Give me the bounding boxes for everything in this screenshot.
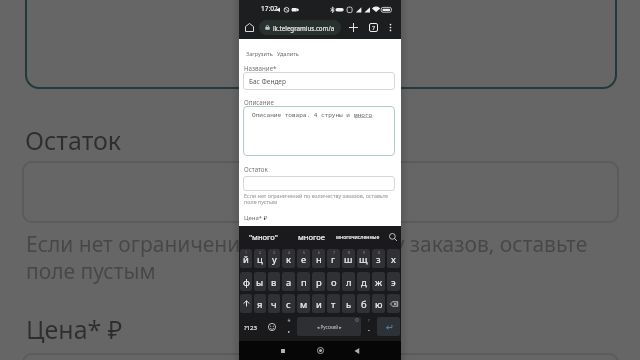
button[interactable]: New tab xyxy=(345,19,361,35)
staticText: 17:02 xyxy=(261,4,278,13)
button[interactable]: , xyxy=(282,317,295,336)
button[interactable]: 6 xyxy=(312,249,325,268)
button[interactable]: э xyxy=(387,272,400,291)
button[interactable]: 0 xyxy=(372,249,385,268)
button[interactable]: м xyxy=(297,294,310,313)
staticText: 8 xyxy=(348,250,350,255)
staticText: Загрузить xyxy=(246,50,273,58)
button[interactable]: многое xyxy=(289,226,333,247)
button[interactable]: ю xyxy=(372,294,385,313)
staticText: д xyxy=(361,276,367,289)
staticText: 6 xyxy=(318,250,320,255)
button[interactable]: Tabs xyxy=(365,19,381,35)
button[interactable]: 1 xyxy=(240,249,252,268)
button[interactable]: а xyxy=(282,272,295,291)
button[interactable]: Enter xyxy=(377,317,400,336)
staticText: многочисленные xyxy=(336,233,380,240)
staticText: Цена* ₽ xyxy=(26,312,123,346)
staticText: 0 xyxy=(378,250,380,255)
button[interactable]: 5 xyxy=(297,249,310,268)
staticText: 5 xyxy=(303,250,305,255)
button[interactable]: 7 xyxy=(327,249,340,268)
staticText: 1 xyxy=(245,250,247,255)
staticText: Удалить xyxy=(277,50,299,58)
staticText: много xyxy=(354,111,373,119)
button[interactable]: многочисленные xyxy=(336,226,380,247)
button[interactable]: Shift xyxy=(240,294,252,313)
staticText: х xyxy=(391,253,396,266)
button[interactable]: в xyxy=(268,272,280,291)
button[interactable]: и xyxy=(312,294,325,313)
button[interactable]: . xyxy=(362,317,375,336)
button[interactable]: 3 xyxy=(268,249,280,268)
staticText: ч xyxy=(271,298,277,311)
button[interactable]: ?123 xyxy=(239,317,261,336)
staticText: , xyxy=(288,325,290,335)
staticText: г xyxy=(331,253,336,266)
button[interactable]: р xyxy=(312,272,325,291)
button[interactable]: ф xyxy=(240,272,252,291)
staticText: э xyxy=(391,276,396,289)
staticText: Название* xyxy=(244,64,277,72)
staticText: Описание xyxy=(244,98,274,106)
button[interactable]: More options xyxy=(382,19,398,35)
staticText: ы xyxy=(256,276,264,289)
staticText: й xyxy=(243,253,249,266)
button[interactable]: ь xyxy=(342,294,355,313)
button[interactable]: "много" xyxy=(241,226,285,247)
staticText: многое xyxy=(298,232,325,242)
staticText: и xyxy=(316,298,322,311)
staticText: ?123 xyxy=(244,324,257,332)
button[interactable]: Home xyxy=(312,341,328,360)
button[interactable]: 4 xyxy=(282,249,295,268)
staticText: 4 xyxy=(288,250,290,255)
staticText: п xyxy=(301,276,307,289)
staticText: Если нет ограничений по количеству заказ… xyxy=(244,192,389,206)
staticText: Описание товара. 4 струны и xyxy=(252,111,354,119)
staticText: м xyxy=(300,298,308,311)
button[interactable]: Search xyxy=(385,226,400,247)
button[interactable]: д xyxy=(357,272,370,291)
staticText: ? xyxy=(368,318,370,323)
button[interactable]: о xyxy=(327,272,340,291)
staticText: Бас Фендер xyxy=(249,77,286,86)
button[interactable]: ы xyxy=(254,272,266,291)
button[interactable]: Back xyxy=(349,341,365,360)
staticText: 7 xyxy=(333,250,335,255)
button[interactable]: т xyxy=(327,294,340,313)
button[interactable]: Backspace xyxy=(387,294,400,313)
button[interactable]: Home xyxy=(241,19,257,35)
staticText: поле пустым xyxy=(26,257,156,286)
staticText: т xyxy=(331,298,336,311)
button[interactable]: 2 xyxy=(254,249,266,268)
button[interactable]: ◂ Русский ▸ xyxy=(297,317,361,336)
button[interactable]: л xyxy=(342,272,355,291)
staticText: ж xyxy=(375,276,383,289)
staticText: . xyxy=(368,324,370,334)
staticText: р xyxy=(316,276,322,289)
staticText: Если нет ограничений по количеству заказ… xyxy=(26,230,588,259)
staticText: ◂ Русский ▸ xyxy=(317,324,342,330)
button[interactable]: б xyxy=(357,294,370,313)
staticText: я xyxy=(257,298,263,311)
button[interactable]: lk.telegramius.com/a xyxy=(259,20,341,35)
staticText: 9 xyxy=(363,250,365,255)
button[interactable]: Recent apps xyxy=(275,341,291,360)
staticText: 7 xyxy=(372,24,376,31)
staticText: к xyxy=(286,253,291,266)
staticText: "много" xyxy=(249,232,278,242)
staticText: н xyxy=(316,253,322,266)
button[interactable]: 8 xyxy=(342,249,355,268)
button[interactable]: Emoji xyxy=(263,317,281,336)
staticText: Цена* ₽ xyxy=(244,214,268,222)
button[interactable]: 9 xyxy=(357,249,370,268)
button[interactable]: ж xyxy=(372,272,385,291)
button[interactable]: ч xyxy=(268,294,280,313)
staticText: Остаток xyxy=(25,123,122,157)
staticText: о xyxy=(331,276,337,289)
button[interactable]: х xyxy=(387,249,400,268)
button[interactable]: п xyxy=(297,272,310,291)
button[interactable]: я xyxy=(254,294,266,313)
staticText: ф xyxy=(243,276,250,289)
button[interactable]: с xyxy=(282,294,295,313)
